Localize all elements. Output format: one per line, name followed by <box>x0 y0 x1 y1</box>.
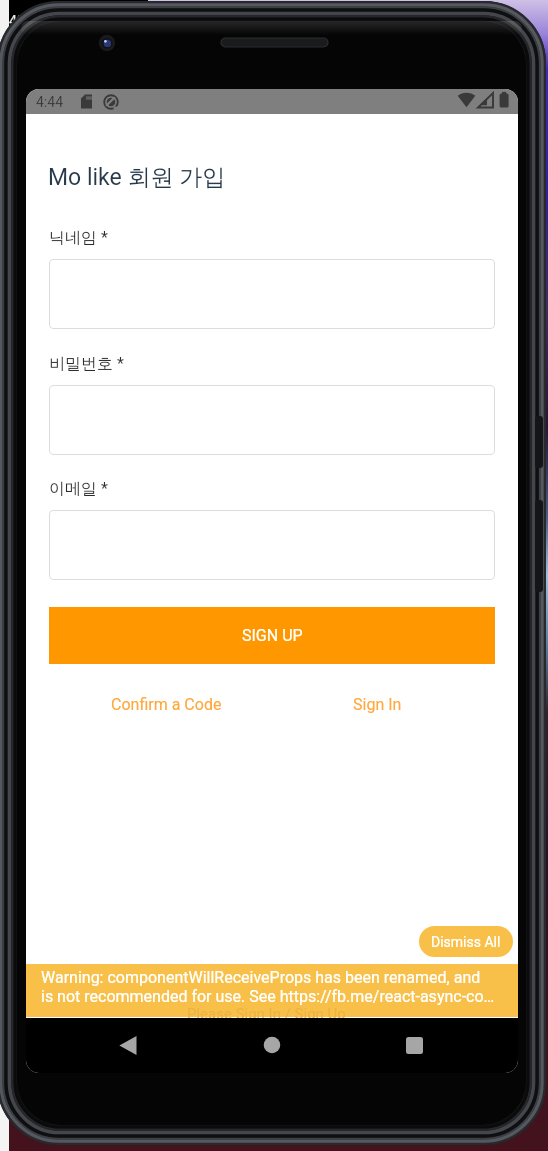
staticText: Sign In <box>353 695 402 714</box>
staticText: 이메일 * <box>49 479 108 499</box>
button[interactable]: SIGN UP <box>49 607 495 664</box>
button[interactable] <box>49 385 495 455</box>
button[interactable]: Home <box>250 1023 294 1067</box>
staticText: 닉네임 * <box>49 228 108 248</box>
button[interactable]: Recent apps <box>392 1023 436 1067</box>
button[interactable]: Confirm a Code <box>111 695 222 714</box>
staticText: Warning: componentWillReceiveProps has b… <box>41 968 495 1006</box>
button[interactable]: Back <box>106 1023 150 1067</box>
button[interactable] <box>49 259 495 329</box>
staticText: 비밀번호 * <box>49 354 124 374</box>
staticText: Please Sign In / Sign Up <box>187 1005 346 1023</box>
staticText: 4:44 <box>36 94 63 110</box>
staticText: Confirm a Code <box>111 695 222 714</box>
staticText: Mo like 회원 가입 <box>48 163 226 192</box>
staticText: SIGN UP <box>242 626 303 645</box>
button[interactable]: Please Sign In / Sign Up <box>26 964 518 1017</box>
button[interactable] <box>49 510 495 580</box>
button[interactable]: Dismiss All <box>419 926 513 957</box>
staticText: 48 <box>9 13 25 29</box>
button[interactable]: Sign In <box>353 695 402 714</box>
staticText: Dismiss All <box>431 934 501 950</box>
